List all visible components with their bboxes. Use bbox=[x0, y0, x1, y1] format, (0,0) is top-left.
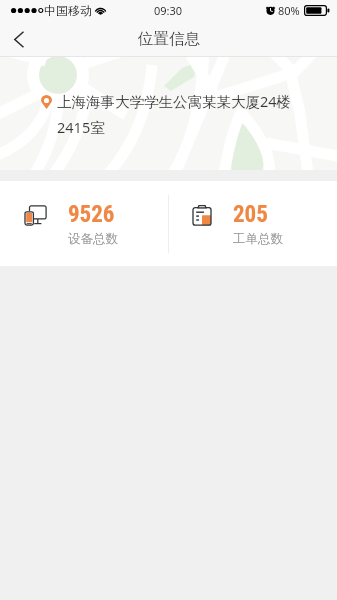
staticText: 9526 bbox=[68, 201, 115, 228]
button[interactable]: Back bbox=[0, 21, 38, 57]
button[interactable]: 205 bbox=[168, 181, 337, 266]
staticText: 205 bbox=[233, 201, 268, 228]
staticText: 工单总数 bbox=[233, 231, 283, 247]
staticText: 80% bbox=[278, 3, 300, 18]
staticText: 上海海事大学学生公寓某某大厦24楼2415室 bbox=[57, 91, 293, 137]
staticText: 中国移动 bbox=[44, 3, 92, 18]
staticText: 09:30 bbox=[154, 3, 183, 18]
staticText: 设备总数 bbox=[68, 231, 118, 247]
button[interactable]: 9526 bbox=[0, 181, 168, 266]
staticText: 位置信息 bbox=[138, 29, 200, 49]
